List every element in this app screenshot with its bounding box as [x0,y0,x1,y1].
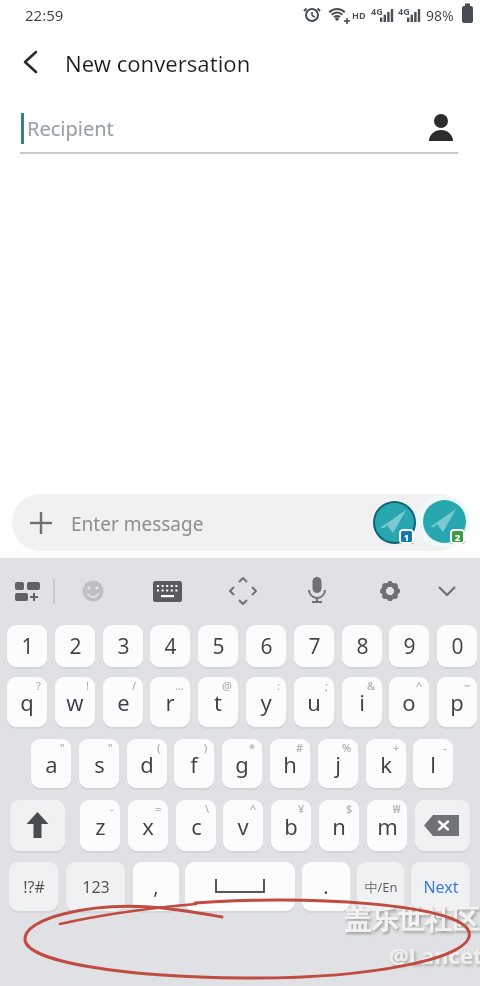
button[interactable]: 5 [198,625,238,667]
button[interactable] [373,501,416,544]
staticText: 1 [21,632,34,661]
staticText: $ [346,801,353,816]
staticText: New conversation [65,48,251,78]
staticText: & [367,678,376,693]
button[interactable]: p [437,677,477,727]
staticText: c [191,811,202,841]
staticText: … [175,678,184,693]
button[interactable] [298,572,336,610]
staticText: j [335,749,341,779]
button[interactable]: 1 [7,625,47,667]
button[interactable]: d [127,739,167,788]
button[interactable]: m [367,800,407,851]
button[interactable]: f [174,739,214,788]
button[interactable] [10,48,52,78]
button[interactable]: q [7,677,47,727]
button[interactable]: 4 [150,625,190,667]
button[interactable] [428,572,466,610]
button[interactable]: , [133,862,179,911]
staticText: g [235,749,249,779]
button[interactable]: 3 [103,625,143,667]
staticText: 4G [398,5,410,17]
staticText: z [95,811,106,841]
button[interactable]: b [271,800,311,851]
staticText: " [108,740,113,755]
button[interactable]: 7 [294,625,334,667]
staticText: i [359,687,365,717]
staticText: - [110,801,114,816]
staticText: @Lancet [389,940,480,970]
button[interactable]: g [222,739,262,788]
button[interactable]: 8 [342,625,382,667]
button[interactable]: s [79,739,119,788]
staticText: 22:59 [25,5,64,25]
button[interactable]: !?# [9,862,58,911]
staticText: % [342,740,352,755]
button[interactable]: a [31,739,71,788]
button[interactable]: x [128,800,168,851]
button[interactable] [74,572,112,610]
button[interactable]: k [366,739,406,788]
staticText: ^ [416,678,423,693]
staticText: + [393,740,400,755]
button[interactable]: v [223,800,263,851]
staticText: e [117,687,130,717]
staticText: = [155,801,162,816]
button[interactable]: 0 [437,625,477,667]
staticText: ~ [464,678,471,693]
button[interactable]: 中/En [357,862,404,911]
staticText: a [45,749,58,779]
button[interactable]: u [294,677,334,727]
staticText: n [332,811,346,841]
button[interactable]: t [198,677,238,727]
button[interactable] [224,572,262,610]
button[interactable]: j [318,739,358,788]
button[interactable]: c [176,800,216,851]
staticText: Enter message [71,511,204,537]
staticText: y [260,687,272,717]
staticText: 7 [308,632,321,661]
button[interactable]: 9 [389,625,429,667]
button[interactable]: h [270,739,310,788]
staticText: l [430,749,436,779]
staticText: / [132,678,137,693]
button[interactable] [185,862,295,911]
button[interactable]: e [103,677,143,727]
staticText: d [140,749,154,779]
button[interactable] [415,800,470,851]
button[interactable]: o [389,677,429,727]
button[interactable]: 123 [66,862,125,911]
button[interactable]: Next [411,862,470,911]
button[interactable]: 6 [246,625,286,667]
staticText: 2 [69,632,82,661]
button[interactable] [371,572,409,610]
staticText: v [237,811,249,841]
button[interactable]: . [302,862,350,911]
button[interactable]: w [55,677,95,727]
button[interactable] [12,494,467,551]
button[interactable] [148,572,186,610]
button[interactable]: 2 [55,625,95,667]
staticText: 4G [371,5,383,17]
button[interactable] [10,800,65,851]
staticText: q [20,687,34,717]
button[interactable] [423,500,466,543]
staticText: 8 [356,632,369,661]
button[interactable] [8,572,46,610]
button[interactable]: n [319,800,359,851]
button[interactable]: y [246,677,286,727]
staticText: 98% [426,6,454,25]
staticText: b [284,811,298,841]
staticText: ₩ [393,801,401,816]
staticText: r [165,687,175,717]
button[interactable]: r [150,677,190,727]
staticText: 中/En [364,878,398,896]
staticText: ? [36,678,41,693]
button[interactable]: l [413,739,453,788]
button[interactable]: i [342,677,382,727]
staticText: ¥ [298,801,305,816]
staticText: 4 [164,632,177,661]
button[interactable] [426,112,456,144]
staticText: \ [205,801,210,816]
button[interactable]: z [80,800,120,851]
